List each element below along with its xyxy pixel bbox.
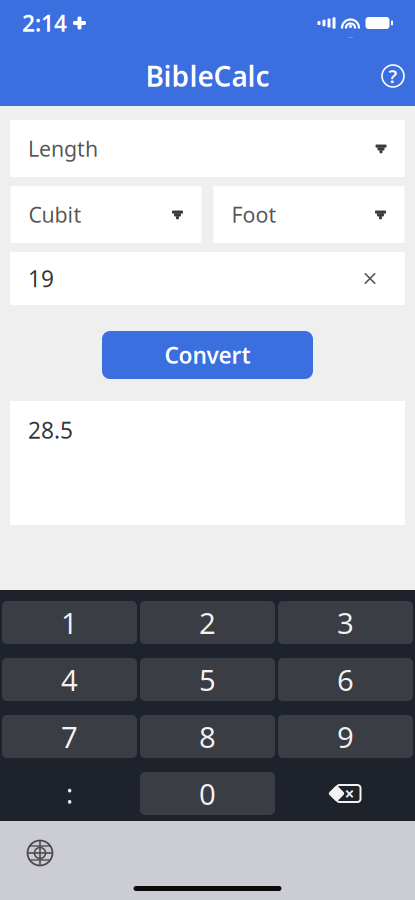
staticText: × xyxy=(344,782,354,805)
button[interactable]: 2 xyxy=(140,601,275,644)
staticText: Foot xyxy=(231,200,276,229)
staticText: 2 xyxy=(199,603,216,642)
button[interactable]: 6 xyxy=(278,658,413,701)
staticText: BibleCalc xyxy=(145,57,269,95)
staticText: 19 xyxy=(28,263,54,293)
staticText: 0 xyxy=(199,774,216,813)
button[interactable]: 9 xyxy=(278,715,413,758)
staticText: 28.5 xyxy=(28,415,73,445)
button[interactable]: 0 xyxy=(140,772,275,815)
button[interactable]: Next keyboard xyxy=(18,831,62,875)
staticText: 7 xyxy=(61,717,78,756)
staticText: : xyxy=(66,776,73,811)
button[interactable]: 3 xyxy=(278,601,413,644)
button[interactable]: Clear xyxy=(353,261,387,295)
staticText: 8 xyxy=(199,717,216,756)
button[interactable]: Convert xyxy=(102,331,313,379)
staticText: Length xyxy=(28,134,98,163)
button[interactable]: 5 xyxy=(140,658,275,701)
button[interactable]: 1 xyxy=(2,601,137,644)
staticText: 3 xyxy=(337,603,354,642)
button[interactable]: Help xyxy=(371,54,415,98)
button[interactable]: 8 xyxy=(140,715,275,758)
button[interactable]: Delete xyxy=(278,772,413,815)
staticText: 6 xyxy=(337,660,354,699)
button[interactable]: Length xyxy=(10,120,405,177)
staticText: 1 xyxy=(61,603,78,642)
staticText: 5 xyxy=(199,660,216,699)
button[interactable]: Cubit xyxy=(10,186,201,243)
button[interactable]: 4 xyxy=(2,658,137,701)
button[interactable]: : xyxy=(2,772,137,815)
staticText: 9 xyxy=(337,717,354,756)
button[interactable]: 7 xyxy=(2,715,137,758)
button[interactable]: Foot xyxy=(213,186,404,243)
staticText: Cubit xyxy=(28,200,81,229)
staticText: 2:14 xyxy=(22,8,67,38)
staticText: ? xyxy=(388,64,397,88)
staticText: Convert xyxy=(164,340,250,370)
staticText: 4 xyxy=(61,660,78,699)
